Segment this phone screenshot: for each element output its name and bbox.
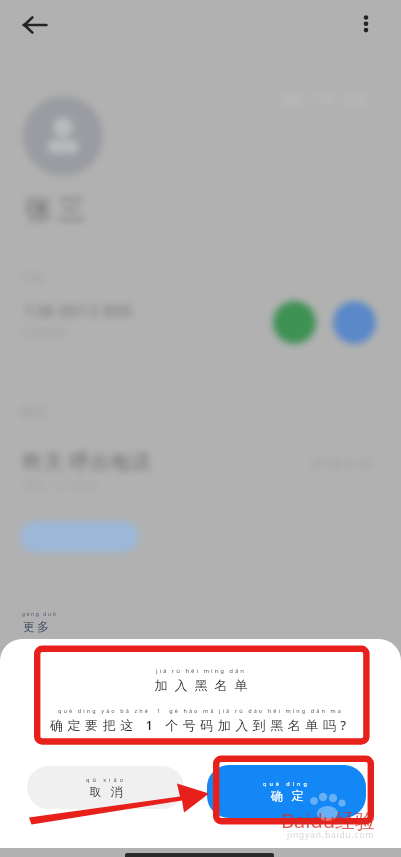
staticText: 昨天 呼出电话	[23, 448, 151, 475]
staticText: 取消	[85, 784, 127, 799]
staticText: jingyan.baidu.com	[287, 829, 375, 841]
button[interactable]: què dìng	[207, 765, 366, 818]
button[interactable]: Back	[13, 3, 56, 46]
staticText: qǔ xiāo	[86, 776, 126, 783]
staticText: 更多	[22, 619, 50, 634]
staticText: 确定	[266, 788, 308, 803]
staticText: 138 0013 800	[24, 299, 133, 322]
staticText: què dìng	[263, 780, 310, 787]
staticText: Baidu经验	[281, 807, 376, 834]
staticText: jiā rù hēi míng dān	[156, 667, 246, 675]
staticText: 加入黑名单	[151, 677, 251, 693]
staticText: gèng duō	[22, 611, 58, 618]
staticText: què dìng yào bǎ zhè 1 gè hào mǎ jiā rù d…	[58, 707, 343, 714]
staticText: 确定要把这 1 个号码加入到黑名单吗?	[50, 716, 351, 734]
button[interactable]: More options	[344, 3, 387, 46]
staticText: 张三	[22, 192, 88, 227]
button[interactable]: qǔ xiāo	[27, 766, 184, 809]
